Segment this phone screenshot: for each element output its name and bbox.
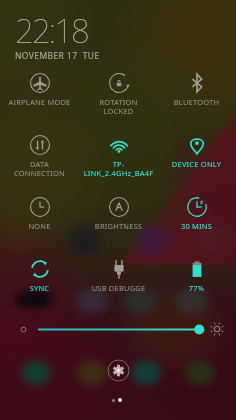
- other: Minimum brightness: [18, 324, 29, 335]
- button[interactable]: SYNC: [0, 248, 79, 298]
- staticText: DATA CONNECTION: [1, 159, 78, 179]
- staticText: USB DEBUGGE: [80, 283, 157, 293]
- staticText: 30 MINS: [158, 221, 235, 231]
- button[interactable]: AIRPLANE MODE: [0, 62, 79, 112]
- staticText: AIRPLANE MODE: [1, 97, 78, 107]
- staticText: NONE: [1, 221, 78, 231]
- button[interactable]: Settings: [107, 359, 130, 382]
- staticText: 77%: [158, 283, 235, 293]
- button[interactable]: 30 MINS: [157, 186, 236, 236]
- button[interactable]: DEVICE ONLY: [157, 124, 236, 174]
- staticText: BRIGHTNESS: [80, 221, 157, 231]
- button[interactable]: 77%: [157, 248, 236, 298]
- button[interactable]: BLUETOOTH: [157, 62, 236, 112]
- staticText: NOVEMBER 17 TUE: [15, 50, 100, 62]
- staticText: BLUETOOTH: [158, 97, 235, 107]
- staticText: ROTATION LOCKED: [80, 97, 157, 117]
- staticText: SYNC: [1, 283, 78, 293]
- button[interactable]: ROTATION LOCKED: [79, 62, 158, 112]
- button[interactable]: [32, 319, 208, 340]
- button[interactable]: DATA CONNECTION: [0, 124, 79, 174]
- button[interactable]: USB DEBUGGE: [79, 248, 158, 298]
- staticText: 22:18: [15, 8, 88, 53]
- button[interactable]: NONE: [0, 186, 79, 236]
- other: Maximum brightness: [210, 322, 224, 336]
- staticText: DEVICE ONLY: [158, 159, 235, 169]
- button[interactable]: BRIGHTNESS: [79, 186, 158, 236]
- button[interactable]: TP- LINK_2.4GHz_BA4F: [79, 124, 158, 174]
- staticText: TP- LINK_2.4GHz_BA4F: [80, 159, 157, 179]
